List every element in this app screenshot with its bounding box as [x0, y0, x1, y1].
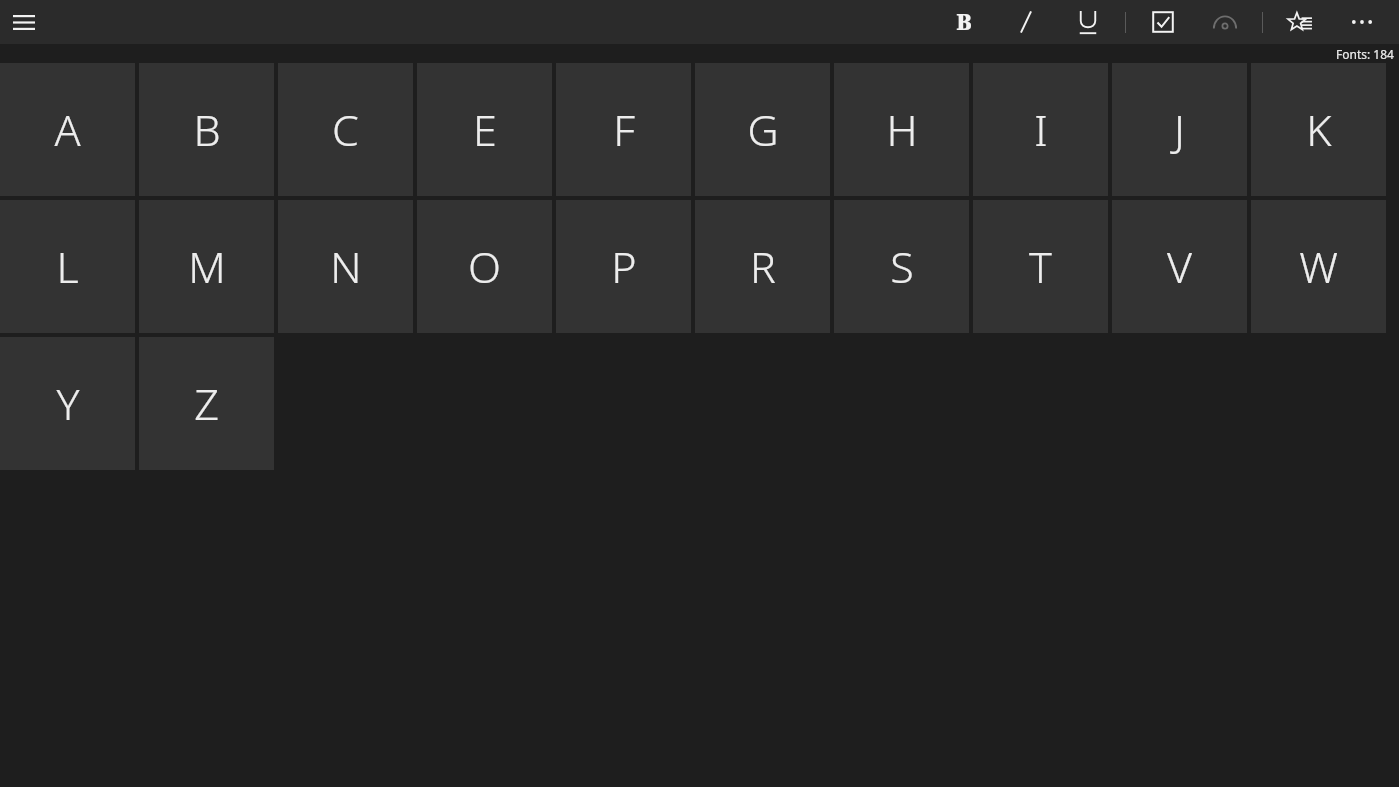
- staticText: P: [611, 237, 637, 296]
- staticText: L: [56, 237, 79, 296]
- button[interactable]: P: [556, 200, 691, 333]
- button[interactable]: Favorite styles: [1269, 0, 1331, 44]
- button[interactable]: F: [556, 63, 691, 196]
- staticText: G: [747, 100, 779, 159]
- staticText: C: [332, 100, 359, 159]
- button[interactable]: N: [278, 200, 413, 333]
- button[interactable]: A: [0, 63, 135, 196]
- button[interactable]: L: [0, 200, 135, 333]
- button[interactable]: Underline: [1057, 0, 1119, 44]
- button[interactable]: M: [139, 200, 274, 333]
- button[interactable]: Checkbox: [1132, 0, 1194, 44]
- button[interactable]: Highlight: [1194, 0, 1256, 44]
- staticText: W: [1299, 237, 1338, 296]
- button[interactable]: G: [695, 63, 830, 196]
- button[interactable]: E: [417, 63, 552, 196]
- staticText: V: [1167, 237, 1192, 296]
- button[interactable]: R: [695, 200, 830, 333]
- button[interactable]: Bold: [933, 0, 995, 44]
- button[interactable]: Y: [0, 337, 135, 470]
- staticText: H: [886, 100, 918, 159]
- staticText: N: [330, 237, 362, 296]
- staticText: B: [193, 100, 221, 159]
- staticText: Z: [194, 374, 219, 433]
- button[interactable]: O: [417, 200, 552, 333]
- button[interactable]: V: [1112, 200, 1247, 333]
- staticText: F: [613, 100, 635, 159]
- button[interactable]: Z: [139, 337, 274, 470]
- button[interactable]: H: [834, 63, 969, 196]
- button[interactable]: C: [278, 63, 413, 196]
- staticText: B: [956, 8, 972, 37]
- button[interactable]: T: [973, 200, 1108, 333]
- staticText: Y: [56, 374, 80, 433]
- staticText: I: [1034, 100, 1048, 159]
- staticText: E: [473, 100, 497, 159]
- staticText: R: [750, 237, 776, 296]
- staticText: S: [890, 237, 914, 296]
- staticText: Fonts: 184: [1336, 46, 1394, 62]
- button[interactable]: Menu: [4, 0, 44, 44]
- button[interactable]: S: [834, 200, 969, 333]
- button[interactable]: W: [1251, 200, 1386, 333]
- button[interactable]: Italic: [995, 0, 1057, 44]
- staticText: A: [54, 100, 81, 159]
- button[interactable]: K: [1251, 63, 1386, 196]
- staticText: K: [1306, 100, 1332, 159]
- staticText: T: [1029, 237, 1052, 296]
- button[interactable]: More options: [1331, 0, 1393, 44]
- button[interactable]: B: [139, 63, 274, 196]
- staticText: M: [188, 237, 226, 296]
- button[interactable]: I: [973, 63, 1108, 196]
- button[interactable]: J: [1112, 63, 1247, 196]
- staticText: J: [1174, 100, 1185, 159]
- staticText: O: [468, 237, 501, 296]
